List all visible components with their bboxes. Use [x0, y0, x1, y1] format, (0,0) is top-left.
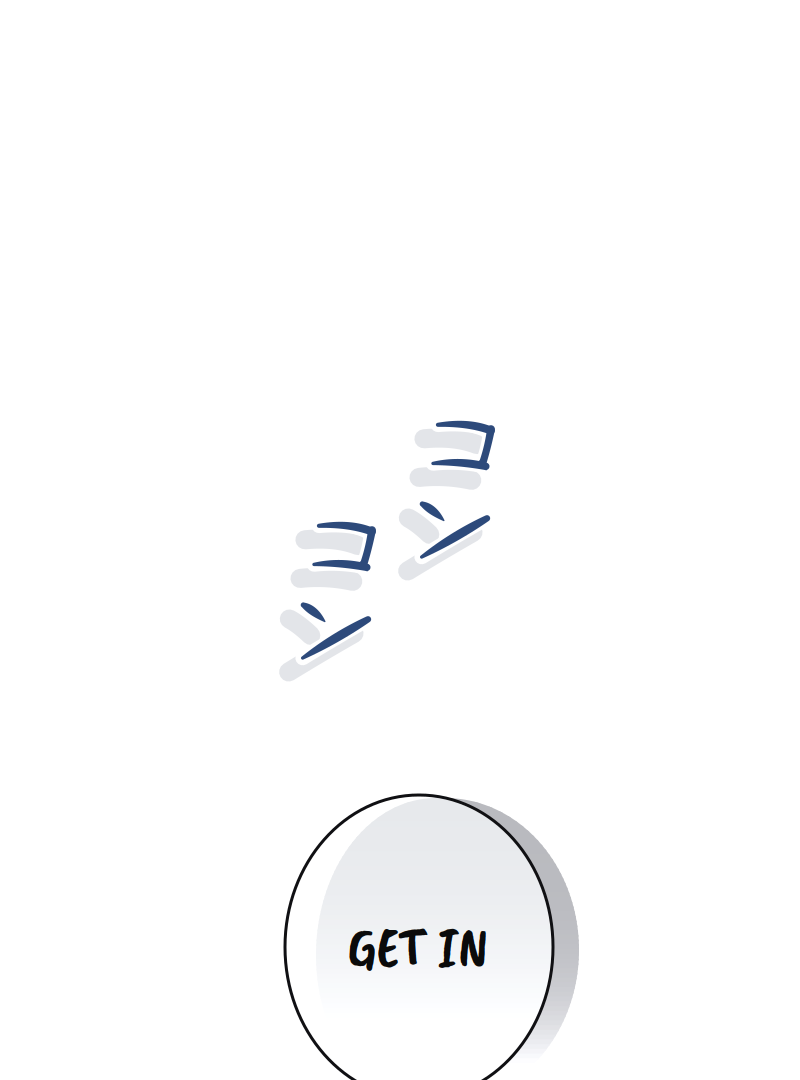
- button[interactable]: GET IN: [0, 0, 800, 1080]
- staticText: GET IN: [347, 912, 488, 982]
